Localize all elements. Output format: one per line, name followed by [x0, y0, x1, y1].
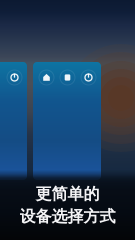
staticText: 更简单的 — [35, 184, 99, 204]
staticText: 设备选择方式 — [19, 207, 115, 226]
